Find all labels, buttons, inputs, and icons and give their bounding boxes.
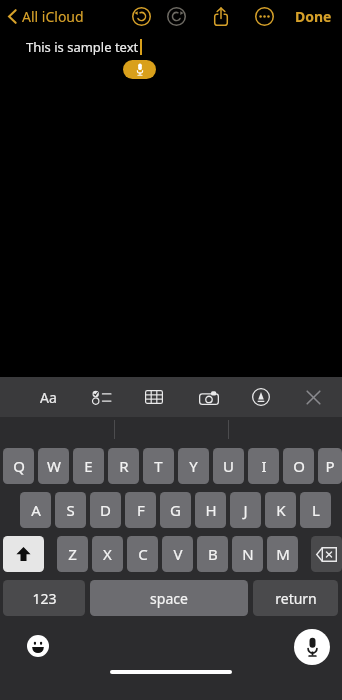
button[interactable]: T [143,448,174,484]
staticText: Q [13,456,25,476]
staticText: D [100,500,111,520]
button[interactable]: B [197,536,228,572]
staticText: H [205,500,217,520]
staticText: I [261,456,267,476]
button[interactable]: F [125,492,156,528]
staticText: J [243,500,248,520]
button[interactable]: U [213,448,244,484]
staticText: A [31,500,41,520]
button[interactable]: Camera [194,377,224,417]
button[interactable]: Done [285,3,342,30]
button[interactable]: Dictation [294,629,330,665]
button[interactable]: C [127,536,158,572]
button[interactable]: S [55,492,86,528]
staticText: return [275,589,317,608]
button[interactable]: Text format [33,377,63,417]
button[interactable]: Y [178,448,209,484]
button[interactable]: Redo [161,1,191,31]
button[interactable]: Z [57,536,88,572]
staticText: Z [68,544,77,564]
staticText: C [138,544,148,564]
button[interactable]: Dictate [123,60,156,79]
staticText: Y [189,456,198,476]
button[interactable]: Emoji [27,635,49,657]
button[interactable]: I [248,448,279,484]
button[interactable]: Q [3,448,34,484]
staticText: S [66,500,75,520]
button[interactable]: A [20,492,51,528]
button[interactable]: H [195,492,226,528]
button[interactable]: Close keyboard [298,377,328,417]
button[interactable]: E [73,448,104,484]
staticText: E [84,456,93,476]
button[interactable]: return [253,580,338,616]
staticText: N [242,544,254,564]
button[interactable]: Share [206,1,236,31]
staticText: B [208,544,218,564]
staticText: R [119,456,129,476]
button[interactable]: Markup [246,377,276,417]
staticText: space [150,589,188,608]
button[interactable]: More options [249,1,279,31]
staticText: W [47,456,61,476]
button[interactable]: Backspace [311,536,342,572]
staticText: G [170,500,181,520]
staticText: Aa [40,388,57,407]
staticText: This is sample text [26,38,139,56]
staticText: All iCloud [22,7,84,26]
button[interactable]: K [265,492,296,528]
button[interactable]: Shift [3,536,44,572]
staticText: L [312,500,320,520]
staticText: O [293,456,305,476]
button[interactable]: V [162,536,193,572]
staticText: 123 [32,589,57,608]
button[interactable]: J [230,492,261,528]
staticText: V [173,544,183,564]
button[interactable]: X [92,536,123,572]
button[interactable]: M [267,536,298,572]
staticText: Done [295,7,332,26]
button[interactable]: Checklist [86,377,116,417]
button[interactable]: W [38,448,69,484]
button[interactable]: R [108,448,139,484]
button[interactable]: 123 [3,580,85,616]
button[interactable]: space [90,580,248,616]
button[interactable]: L [300,492,331,528]
button[interactable]: Undo [126,1,156,31]
button[interactable]: O [283,448,314,484]
staticText: F [137,500,145,520]
button[interactable]: P [318,448,342,484]
button[interactable]: D [90,492,121,528]
button[interactable]: All iCloud [0,3,90,30]
staticText: T [154,456,163,476]
staticText: X [103,544,112,564]
button[interactable]: G [160,492,191,528]
staticText: M [276,544,290,564]
staticText: P [325,456,335,476]
staticText: K [276,500,286,520]
button[interactable]: Table [139,377,169,417]
staticText: U [223,456,234,476]
button[interactable]: N [232,536,263,572]
